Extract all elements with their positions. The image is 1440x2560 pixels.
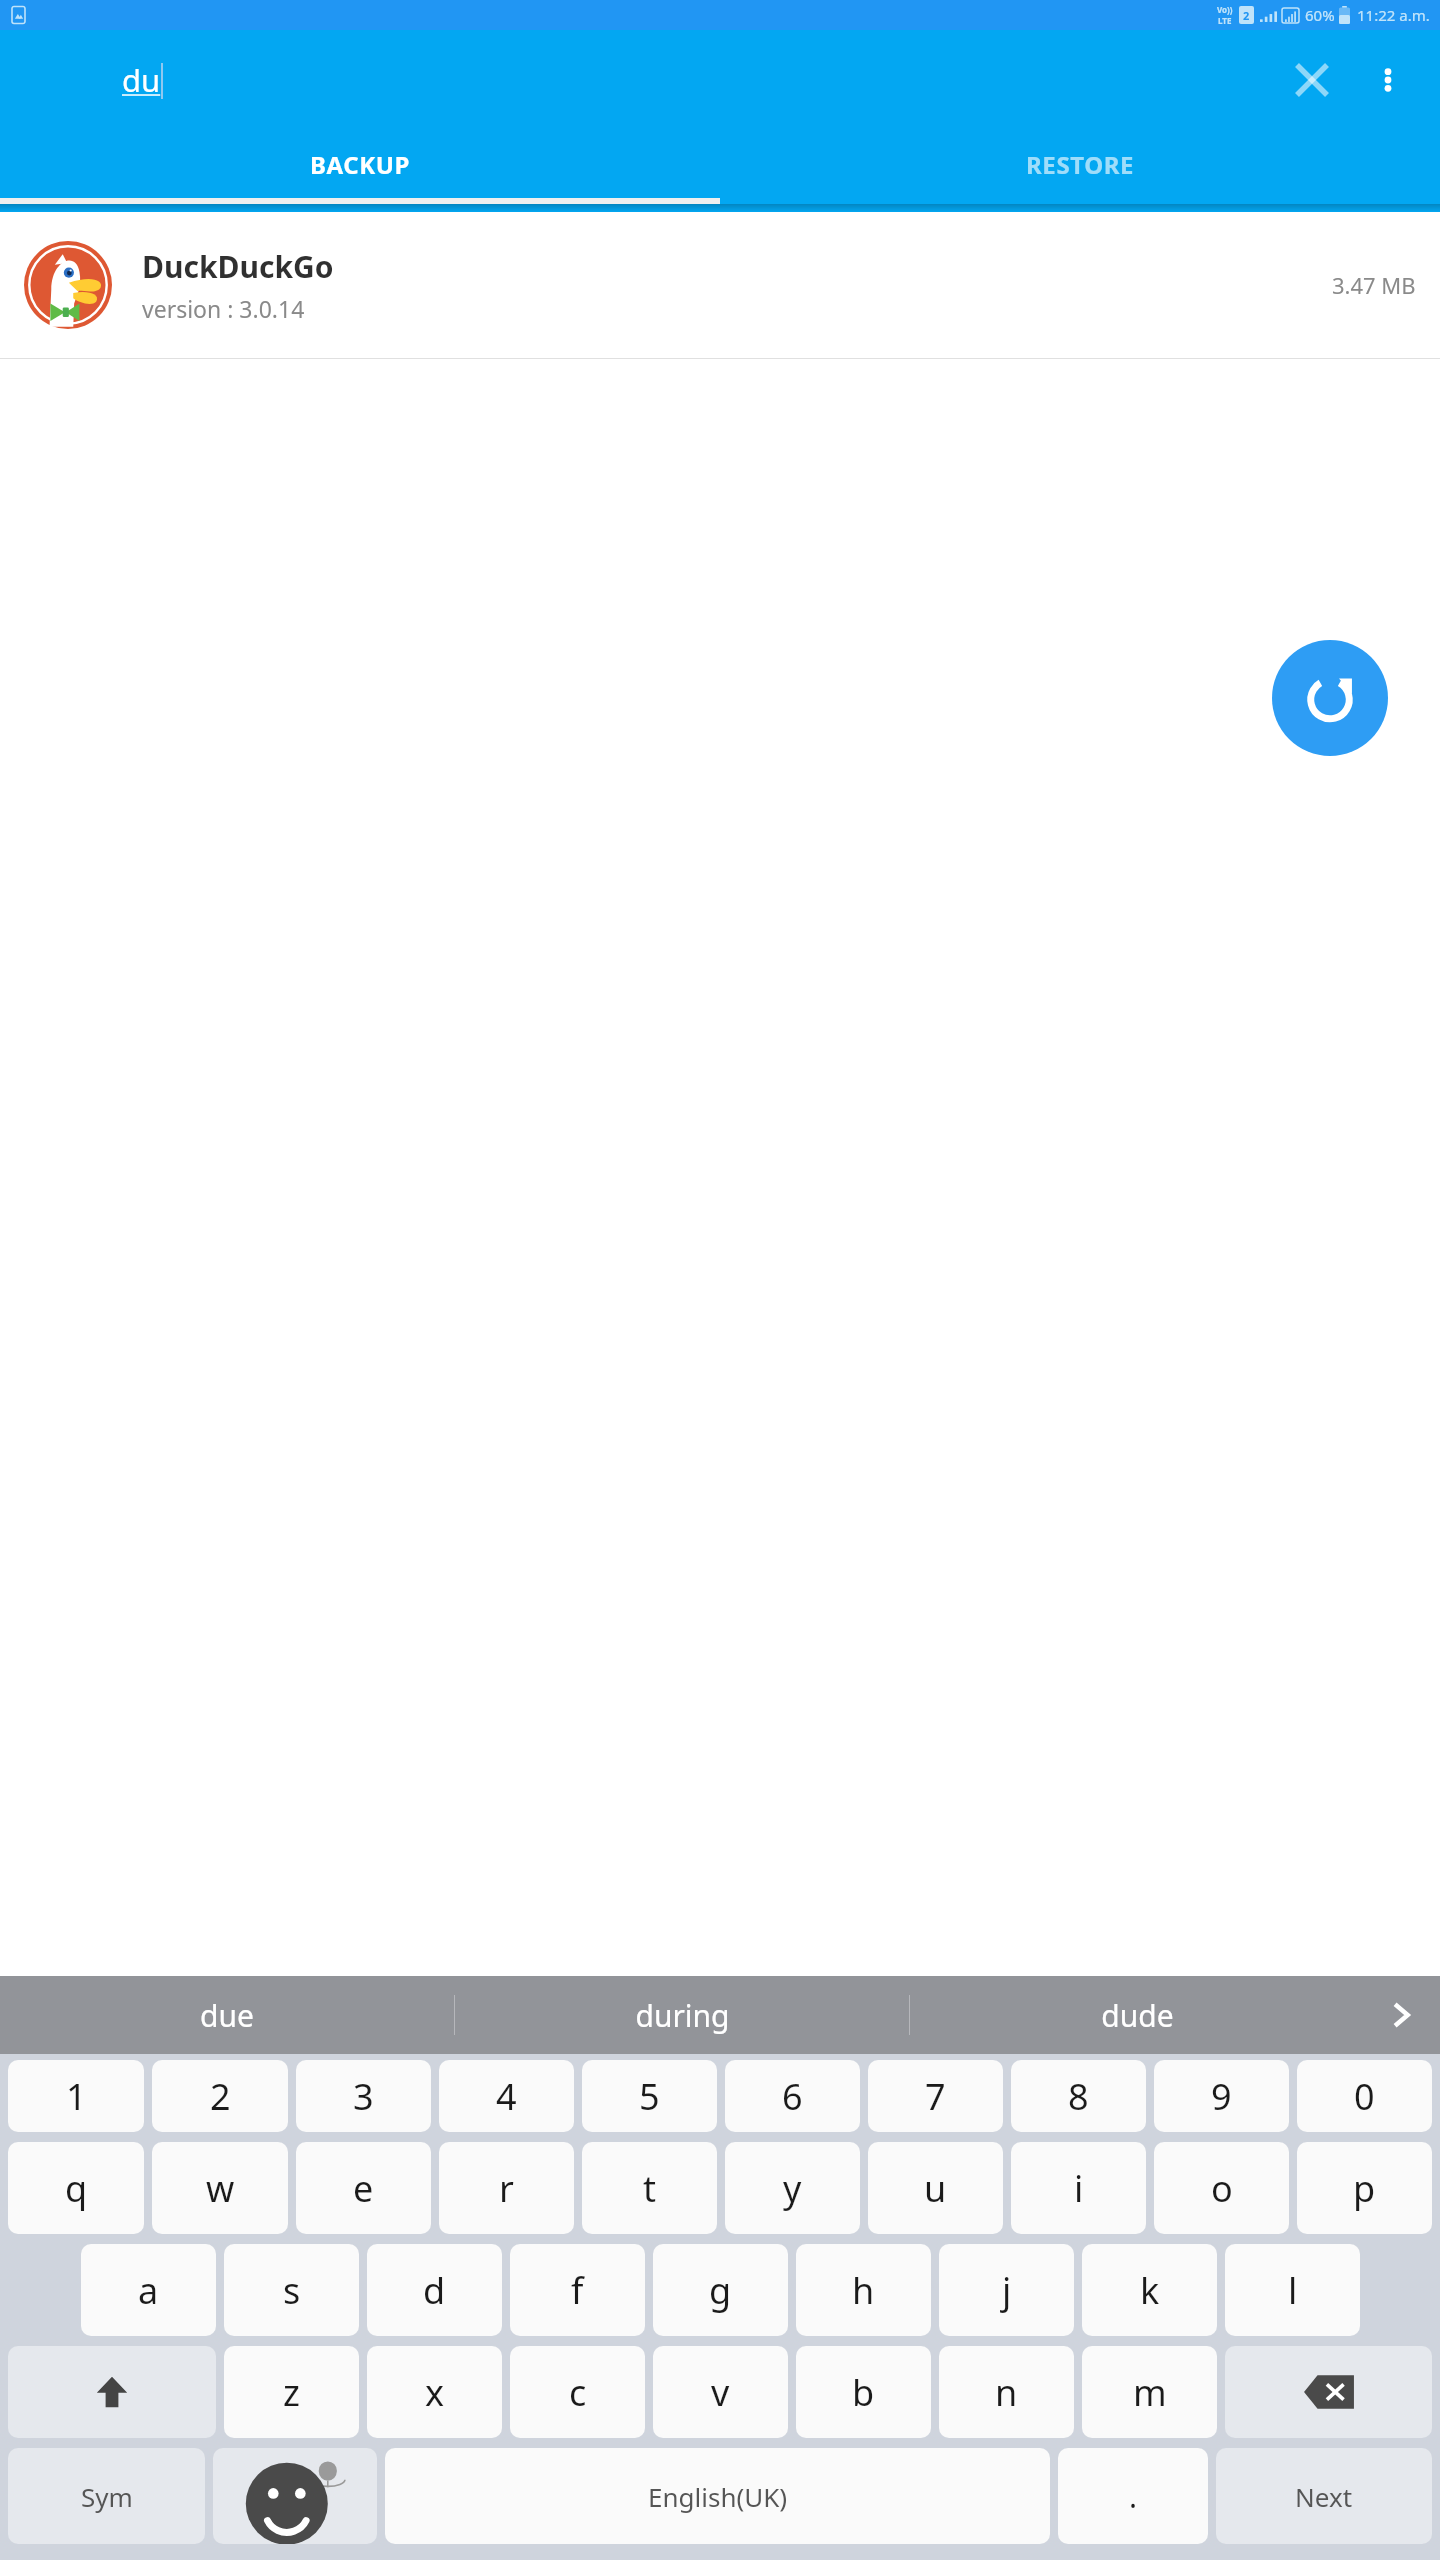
staticText: a	[138, 2266, 159, 2315]
button[interactable]: 5	[582, 2060, 717, 2132]
button[interactable]: e	[296, 2142, 431, 2234]
staticText: 60%	[1305, 5, 1335, 25]
staticText: Sym	[81, 2479, 133, 2514]
button[interactable]: during	[455, 1976, 909, 2054]
staticText: p	[1353, 2164, 1376, 2213]
staticText: u	[924, 2164, 947, 2213]
button[interactable]: dude	[910, 1976, 1364, 2054]
button[interactable]: m	[1082, 2346, 1217, 2438]
staticText: x	[425, 2368, 445, 2417]
staticText: v	[711, 2368, 730, 2417]
staticText: j	[1002, 2266, 1012, 2315]
button[interactable]: u	[868, 2142, 1003, 2234]
button[interactable]: 9	[1154, 2060, 1289, 2132]
button[interactable]: DuckDuckGo	[0, 212, 1440, 358]
staticText: du	[122, 59, 161, 101]
button[interactable]: o	[1154, 2142, 1289, 2234]
staticText: 2	[1243, 8, 1250, 23]
button[interactable]: 6	[725, 2060, 860, 2132]
button[interactable]: Refresh	[1272, 640, 1388, 756]
staticText: i	[1074, 2164, 1084, 2213]
button[interactable]: More suggestions	[1364, 1976, 1440, 2054]
button[interactable]: Shift	[8, 2346, 216, 2438]
button[interactable]: Sym	[8, 2448, 205, 2544]
staticText: c	[569, 2368, 587, 2417]
staticText: d	[423, 2266, 446, 2315]
button[interactable]: due	[0, 1976, 454, 2054]
button[interactable]: Clear	[1284, 52, 1340, 108]
button[interactable]: c	[510, 2346, 645, 2438]
staticText: 3.47 MB	[1332, 270, 1416, 300]
staticText: s	[283, 2266, 301, 2315]
staticText: version : 3.0.14	[142, 293, 305, 324]
button[interactable]: p	[1297, 2142, 1432, 2234]
button[interactable]: x	[367, 2346, 502, 2438]
button[interactable]: BACKUP	[0, 130, 720, 198]
button[interactable]: Next	[1216, 2448, 1432, 2544]
button[interactable]: 1	[8, 2060, 144, 2132]
staticText: k	[1140, 2266, 1160, 2315]
button[interactable]: q	[8, 2142, 144, 2234]
button[interactable]: 0	[1297, 2060, 1432, 2132]
staticText: q	[65, 2164, 88, 2213]
button[interactable]: t	[582, 2142, 717, 2234]
staticText: 4	[496, 2072, 517, 2121]
button[interactable]: d	[367, 2244, 502, 2336]
staticText: 2	[210, 2072, 231, 2121]
staticText: LTE	[1218, 15, 1232, 26]
staticText: m	[1133, 2368, 1167, 2417]
button[interactable]: More options	[1360, 52, 1416, 108]
staticText: 6	[782, 2072, 803, 2121]
button[interactable]: b	[796, 2346, 931, 2438]
button[interactable]: Emoji and voice input	[213, 2448, 377, 2544]
button[interactable]: r	[439, 2142, 574, 2234]
staticText: b	[852, 2368, 875, 2417]
staticText: 7	[925, 2072, 946, 2121]
button[interactable]: RESTORE	[720, 130, 1440, 198]
staticText: Next	[1295, 2479, 1353, 2514]
staticText: 5	[639, 2072, 660, 2121]
button[interactable]: 4	[439, 2060, 574, 2132]
staticText: RESTORE	[1026, 148, 1135, 181]
staticText: n	[995, 2368, 1018, 2417]
staticText: dude	[1101, 1995, 1174, 2036]
button[interactable]: h	[796, 2244, 931, 2336]
button[interactable]: 3	[296, 2060, 431, 2132]
button[interactable]: i	[1011, 2142, 1146, 2234]
button[interactable]: k	[1082, 2244, 1217, 2336]
staticText: r	[499, 2164, 514, 2213]
staticText: f	[571, 2266, 584, 2315]
button[interactable]: 2	[152, 2060, 288, 2132]
button[interactable]: g	[653, 2244, 788, 2336]
button[interactable]: .	[1058, 2448, 1208, 2544]
button[interactable]: v	[653, 2346, 788, 2438]
staticText: due	[200, 1995, 254, 2036]
staticText: 11:22 a.m.	[1357, 5, 1430, 25]
staticText: g	[709, 2266, 732, 2315]
button[interactable]: l	[1225, 2244, 1360, 2336]
button[interactable]: s	[224, 2244, 359, 2336]
staticText: BACKUP	[310, 148, 411, 181]
button[interactable]: f	[510, 2244, 645, 2336]
button[interactable]: 7	[868, 2060, 1003, 2132]
staticText: DuckDuckGo	[142, 246, 334, 287]
staticText: 0	[1354, 2072, 1375, 2121]
button[interactable]: z	[224, 2346, 359, 2438]
staticText: e	[353, 2164, 374, 2213]
button[interactable]: English(UK)	[385, 2448, 1050, 2544]
button[interactable]: j	[939, 2244, 1074, 2336]
staticText: 8	[1068, 2072, 1089, 2121]
button[interactable]: w	[152, 2142, 288, 2234]
button[interactable]: a	[81, 2244, 216, 2336]
staticText: h	[852, 2266, 875, 2315]
staticText: during	[635, 1995, 730, 2036]
staticText: English(UK)	[648, 2479, 788, 2514]
button[interactable]: 8	[1011, 2060, 1146, 2132]
button[interactable]: y	[725, 2142, 860, 2234]
staticText: l	[1288, 2266, 1298, 2315]
staticText: Vo))	[1217, 4, 1233, 15]
staticText: 3	[353, 2072, 374, 2121]
staticText: .	[1129, 2476, 1138, 2517]
button[interactable]: n	[939, 2346, 1074, 2438]
button[interactable]: Backspace	[1225, 2346, 1432, 2438]
